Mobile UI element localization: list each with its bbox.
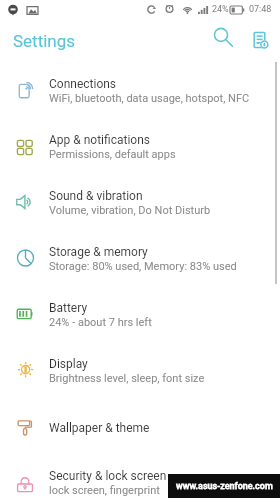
staticText: App & notifications <box>49 133 151 147</box>
staticText: Brightness level, sleep, font size <box>49 372 205 385</box>
button[interactable]: Battery <box>0 284 280 340</box>
button[interactable]: Search <box>208 22 240 54</box>
staticText: Sound & vibration <box>49 189 143 203</box>
staticText: Security & lock screen <box>49 469 167 483</box>
staticText: Storage & memory <box>49 245 148 259</box>
button[interactable]: Sound & vibration <box>0 172 280 228</box>
staticText: www.asus-zenfone.com <box>176 481 273 492</box>
button[interactable]: Storage & memory <box>0 228 280 284</box>
staticText: lock screen, fingerprint <box>49 484 160 497</box>
staticText: WiFi, bluetooth, data usage, hotspot, NF… <box>49 92 250 105</box>
button[interactable]: App & notifications <box>0 116 280 172</box>
staticText: Wallpaper & theme <box>49 421 150 435</box>
button[interactable]: Security & lock screen <box>0 452 280 498</box>
staticText: Battery <box>49 301 88 315</box>
staticText: Permissions, default apps <box>49 148 176 161</box>
staticText: 24% <box>212 4 229 15</box>
staticText: Settings <box>13 31 76 51</box>
staticText: Connections <box>49 77 117 91</box>
staticText: 24% - about 7 hrs left <box>49 316 152 329</box>
button[interactable]: Wallpaper & theme <box>0 396 280 452</box>
staticText: 07:48 <box>249 4 272 15</box>
staticText: Volume, vibration, Do Not Disturb <box>49 204 211 217</box>
button[interactable]: Help and feedback <box>244 24 276 56</box>
staticText: Storage: 80% used, Memory: 83% used <box>49 260 237 273</box>
button[interactable]: Display <box>0 340 280 396</box>
button[interactable]: Connections <box>0 60 280 116</box>
staticText: Display <box>49 357 88 371</box>
